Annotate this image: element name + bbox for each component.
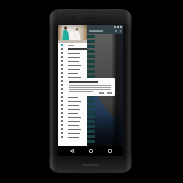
button[interactable] (58, 111, 87, 115)
button[interactable] (58, 131, 87, 135)
button[interactable] (58, 63, 87, 67)
button[interactable] (58, 67, 87, 71)
button[interactable]: Home (85, 146, 96, 156)
button[interactable] (82, 50, 95, 53)
button[interactable] (58, 103, 87, 107)
button[interactable] (58, 115, 87, 119)
button[interactable] (82, 70, 95, 73)
button[interactable] (82, 75, 95, 78)
button[interactable] (58, 91, 87, 95)
button[interactable] (82, 55, 95, 58)
button[interactable] (58, 51, 87, 55)
button[interactable] (58, 43, 87, 47)
button[interactable] (82, 95, 95, 98)
button[interactable] (58, 55, 87, 59)
button[interactable] (58, 87, 87, 91)
button[interactable] (58, 47, 87, 51)
button[interactable] (58, 127, 87, 131)
button[interactable] (82, 90, 95, 93)
button[interactable] (58, 83, 87, 87)
button[interactable] (82, 140, 95, 143)
button[interactable] (58, 71, 87, 75)
button[interactable] (58, 99, 87, 103)
button[interactable] (82, 60, 95, 63)
button[interactable] (82, 65, 95, 68)
button[interactable] (82, 115, 95, 118)
button[interactable] (58, 95, 87, 99)
button[interactable] (82, 35, 95, 38)
button[interactable] (82, 130, 95, 133)
button[interactable] (82, 125, 95, 128)
button[interactable] (58, 135, 87, 139)
button[interactable] (58, 119, 87, 123)
button[interactable] (82, 110, 95, 113)
button[interactable] (82, 80, 95, 83)
button[interactable] (82, 100, 95, 103)
button[interactable] (58, 123, 87, 127)
button[interactable] (82, 120, 95, 123)
button[interactable] (58, 75, 87, 79)
button[interactable] (82, 105, 95, 108)
button[interactable] (82, 135, 95, 138)
button[interactable] (58, 79, 87, 83)
button[interactable] (82, 40, 95, 43)
button[interactable] (58, 59, 87, 63)
button[interactable] (82, 45, 95, 48)
button[interactable]: Back (66, 146, 77, 156)
button[interactable] (58, 107, 87, 111)
button[interactable]: Recents (104, 146, 115, 156)
button[interactable] (82, 85, 95, 88)
